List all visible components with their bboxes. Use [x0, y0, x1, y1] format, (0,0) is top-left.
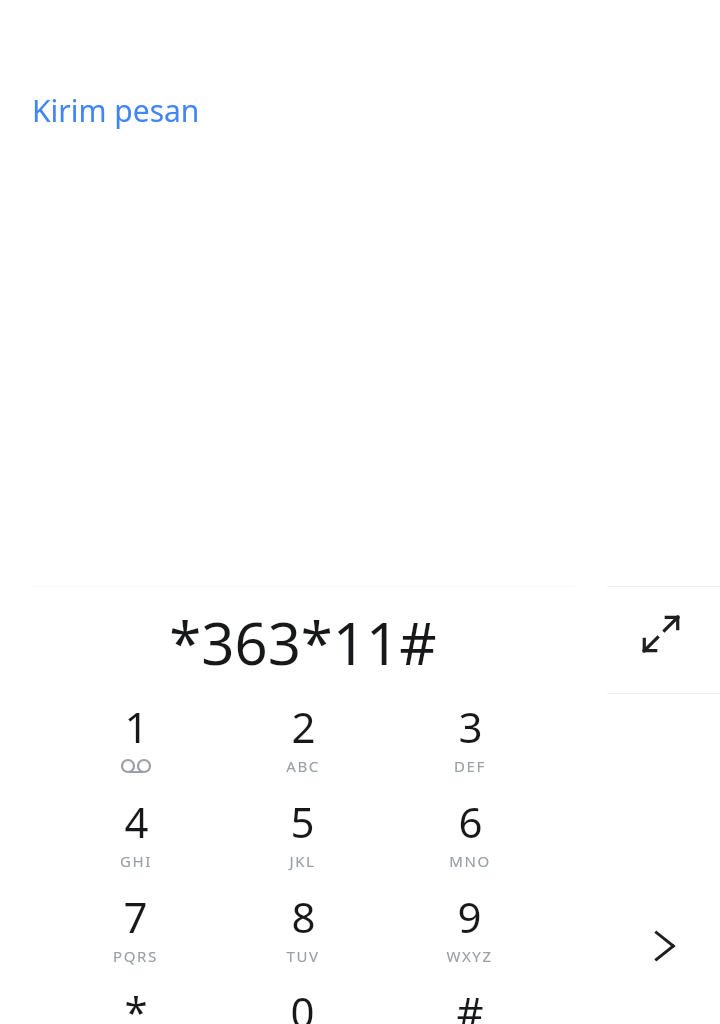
- staticText: 5: [290, 793, 315, 850]
- button[interactable]: Kirim pesan: [32, 88, 200, 133]
- staticText: MNO: [449, 851, 491, 871]
- staticText: 0: [290, 983, 315, 1024]
- staticText: ABC: [286, 756, 320, 776]
- staticText: 2: [291, 698, 316, 755]
- button[interactable]: 0: [219, 983, 386, 1024]
- staticText: PQRS: [113, 946, 158, 966]
- staticText: WXYZ: [446, 946, 493, 966]
- button[interactable]: 7: [52, 888, 219, 983]
- staticText: #: [456, 983, 484, 1024]
- button[interactable]: 2: [219, 698, 386, 793]
- staticText: 9: [457, 888, 482, 945]
- button[interactable]: Expand: [607, 586, 720, 682]
- staticText: *: [124, 983, 148, 1024]
- button[interactable]: 6: [386, 793, 553, 888]
- staticText: 7: [123, 888, 148, 945]
- button[interactable]: 1: [52, 698, 219, 793]
- button[interactable]: 9: [386, 888, 553, 983]
- staticText: 6: [458, 793, 483, 850]
- staticText: Kirim pesan: [32, 90, 200, 131]
- staticText: GHI: [120, 851, 152, 871]
- button[interactable]: 4: [52, 793, 219, 888]
- staticText: 8: [291, 888, 316, 945]
- button[interactable]: Next: [607, 693, 720, 1024]
- staticText: TUV: [286, 946, 320, 966]
- button[interactable]: *363*11#: [8, 586, 597, 698]
- button[interactable]: #: [386, 983, 553, 1024]
- button[interactable]: 3: [386, 698, 553, 793]
- staticText: DEF: [454, 756, 486, 776]
- staticText: 3: [458, 698, 483, 755]
- button[interactable]: *: [52, 983, 219, 1024]
- staticText: 4: [124, 793, 149, 850]
- staticText: *363*11#: [169, 603, 437, 682]
- button[interactable]: 5: [219, 793, 386, 888]
- button[interactable]: 8: [219, 888, 386, 983]
- staticText: JKL: [289, 851, 316, 871]
- staticText: 1: [124, 698, 149, 755]
